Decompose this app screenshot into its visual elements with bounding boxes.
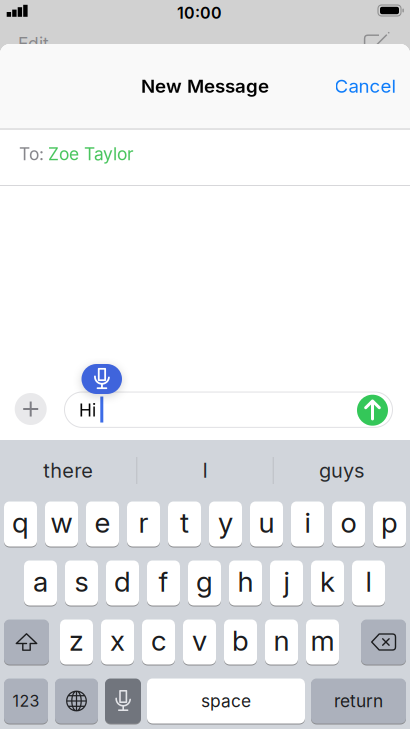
- button[interactable]: More options: [15, 393, 47, 425]
- staticText: space: [201, 691, 251, 711]
- staticText: f: [158, 565, 168, 598]
- button[interactable]: u: [250, 501, 283, 547]
- button[interactable]: Message: [64, 392, 392, 427]
- staticText: u: [258, 506, 274, 539]
- staticText: b: [232, 624, 249, 657]
- staticText: z: [69, 624, 84, 657]
- staticText: Zoe Taylor: [48, 144, 134, 164]
- staticText: Edit: [18, 33, 49, 54]
- button[interactable]: q: [4, 501, 37, 547]
- staticText: d: [114, 565, 131, 598]
- staticText: 10:00: [177, 3, 222, 22]
- button[interactable]: I: [137, 440, 273, 501]
- staticText: g: [196, 565, 213, 598]
- staticText: i: [304, 506, 310, 539]
- button[interactable]: there: [0, 440, 137, 501]
- button[interactable]: guys: [273, 440, 410, 501]
- button[interactable]: 123: [4, 678, 48, 724]
- button[interactable]: Dictate: [105, 678, 141, 724]
- staticText: k: [320, 565, 335, 598]
- button[interactable]: s: [65, 560, 98, 606]
- button[interactable]: c: [142, 619, 175, 665]
- button[interactable]: Dictate: [81, 364, 122, 394]
- button[interactable]: Next keyboard: [55, 678, 98, 724]
- button[interactable]: k: [311, 560, 344, 606]
- button[interactable]: return: [311, 678, 406, 724]
- staticText: c: [151, 624, 166, 657]
- staticText: x: [110, 624, 125, 657]
- button[interactable]: b: [224, 619, 257, 665]
- button[interactable]: Send: [357, 395, 388, 426]
- button[interactable]: o: [332, 501, 365, 547]
- button[interactable]: f: [147, 560, 180, 606]
- staticText: there: [43, 459, 93, 482]
- button[interactable]: To:: [0, 129, 410, 179]
- staticText: a: [33, 565, 48, 598]
- staticText: Cancel: [334, 75, 396, 97]
- button[interactable]: a: [24, 560, 57, 606]
- button[interactable]: r: [127, 501, 160, 547]
- button[interactable]: h: [229, 560, 262, 606]
- staticText: o: [340, 506, 356, 539]
- button[interactable]: g: [188, 560, 221, 606]
- button[interactable]: d: [106, 560, 139, 606]
- staticText: n: [273, 624, 289, 657]
- button[interactable]: t: [168, 501, 201, 547]
- button[interactable]: j: [270, 560, 303, 606]
- staticText: I: [202, 459, 207, 482]
- staticText: l: [365, 565, 371, 598]
- staticText: y: [218, 506, 233, 539]
- button[interactable]: Shift: [4, 619, 49, 665]
- staticText: t: [180, 506, 189, 539]
- staticText: p: [381, 506, 398, 539]
- staticText: h: [237, 565, 253, 598]
- staticText: m: [310, 624, 334, 657]
- button[interactable]: e: [86, 501, 119, 547]
- staticText: e: [94, 506, 110, 539]
- button[interactable]: m: [306, 619, 339, 665]
- staticText: Hi: [79, 400, 96, 420]
- button[interactable]: y: [209, 501, 242, 547]
- button[interactable]: n: [265, 619, 298, 665]
- button[interactable]: l: [352, 560, 385, 606]
- button[interactable]: p: [373, 501, 406, 547]
- button[interactable]: space: [147, 678, 305, 724]
- button[interactable]: w: [45, 501, 78, 547]
- staticText: 123: [12, 692, 39, 710]
- staticText: s: [74, 565, 88, 598]
- staticText: New Message: [141, 75, 269, 97]
- staticText: v: [192, 624, 207, 657]
- staticText: To:: [19, 144, 44, 164]
- button[interactable]: Delete: [361, 619, 406, 665]
- button[interactable]: Cancel: [334, 75, 396, 97]
- staticText: j: [283, 565, 289, 598]
- staticText: guys: [319, 459, 364, 482]
- button[interactable]: x: [101, 619, 134, 665]
- staticText: return: [334, 691, 383, 711]
- button[interactable]: i: [291, 501, 324, 547]
- staticText: r: [138, 506, 148, 539]
- button[interactable]: v: [183, 619, 216, 665]
- staticText: q: [12, 506, 29, 539]
- button[interactable]: z: [60, 619, 93, 665]
- staticText: w: [50, 506, 72, 539]
